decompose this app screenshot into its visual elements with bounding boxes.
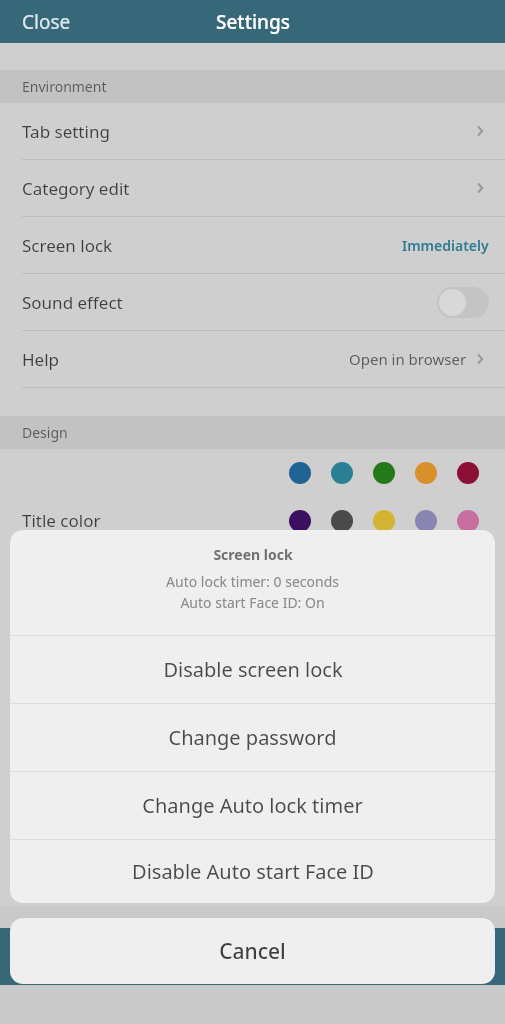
button[interactable]: Category edit (0, 160, 505, 217)
button[interactable] (331, 510, 353, 532)
button[interactable]: Change Auto lock timer (10, 771, 495, 839)
button[interactable]: Detailed information (0, 850, 505, 906)
button[interactable] (373, 510, 395, 532)
button[interactable]: Tab setting (0, 103, 505, 160)
staticText: Auto lock timer: 0 seconds (166, 572, 339, 591)
staticText: Help (22, 348, 60, 371)
staticText: Settings (216, 9, 290, 35)
staticText: Close (22, 9, 71, 35)
staticText: Change password (168, 724, 337, 751)
button[interactable]: Close (0, 3, 87, 41)
staticText: Cancel (219, 937, 286, 966)
button[interactable]: Cancel (10, 918, 495, 984)
button[interactable]: Change password (10, 703, 495, 771)
staticText: Disable Auto start Face ID (132, 858, 374, 885)
staticText: Immediately (402, 236, 489, 255)
staticText: Sound effect (22, 291, 123, 314)
staticText: Tab setting (22, 120, 110, 143)
button[interactable]: Title color (0, 449, 505, 550)
staticText: Change Auto lock timer (142, 792, 363, 819)
button[interactable] (415, 462, 437, 484)
button[interactable]: Help (0, 331, 505, 388)
staticText: Detailed information (22, 867, 188, 890)
button[interactable]: Disable screen lock (10, 635, 495, 703)
button[interactable] (457, 462, 479, 484)
button[interactable]: Sound effect (0, 274, 505, 331)
staticText: Environment (22, 77, 107, 96)
button[interactable]: Disable Auto start Face ID (10, 839, 495, 903)
button[interactable]: Screen lock (0, 217, 505, 274)
staticText: Design (22, 423, 68, 442)
staticText: Disable screen lock (163, 656, 343, 683)
button[interactable] (331, 462, 353, 484)
button[interactable] (415, 510, 437, 532)
staticText: Open in browser (349, 349, 467, 369)
button[interactable] (457, 510, 479, 532)
staticText: Auto start Face ID: On (180, 593, 325, 612)
staticText: Category edit (22, 177, 130, 200)
staticText: Screen lock (213, 545, 293, 564)
button[interactable] (289, 462, 311, 484)
button[interactable] (289, 510, 311, 532)
staticText: Title color (22, 509, 101, 532)
button[interactable] (373, 462, 395, 484)
staticText: Screen lock (22, 234, 113, 257)
